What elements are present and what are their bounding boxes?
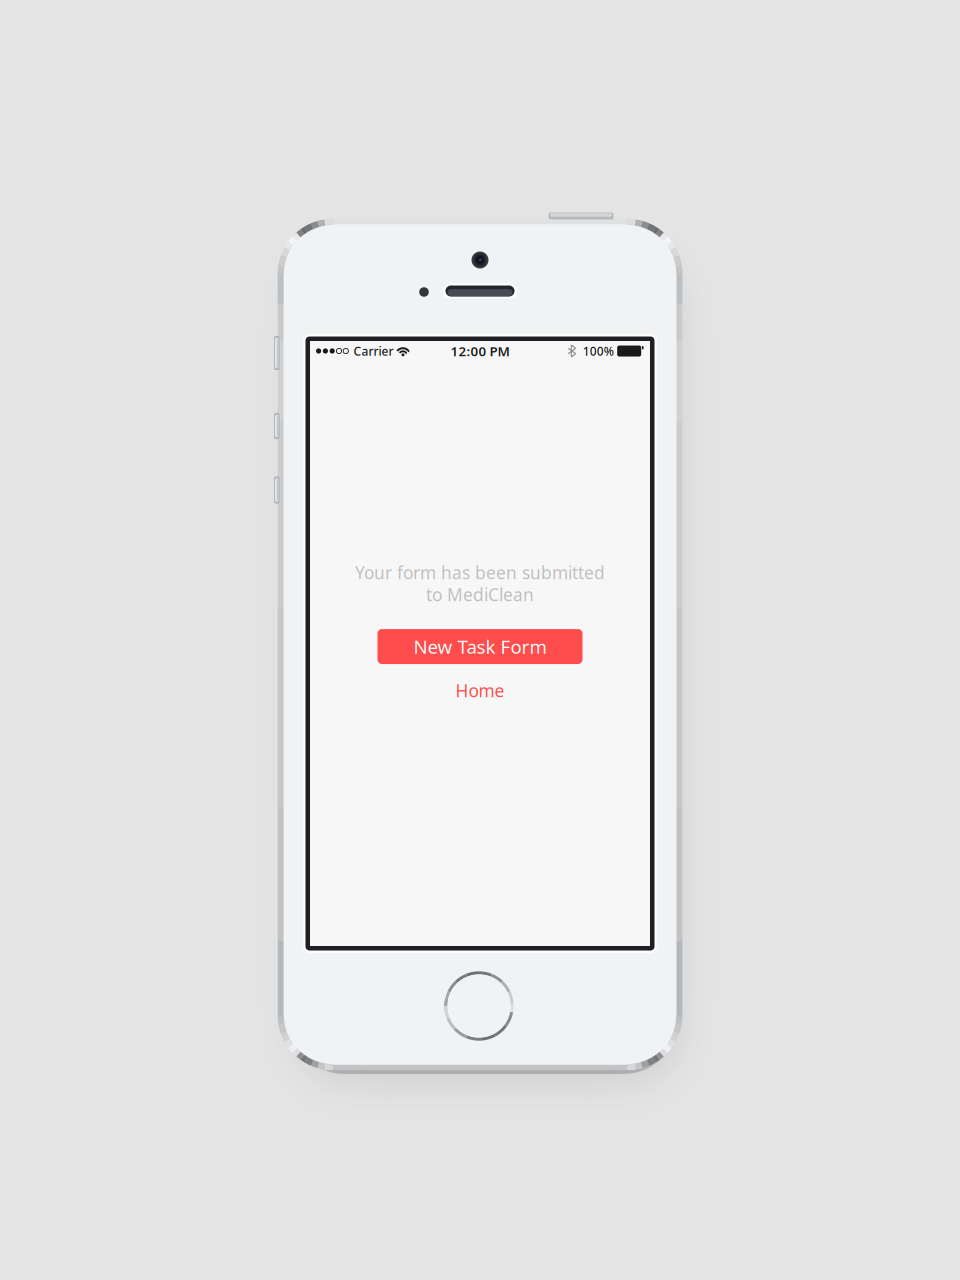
staticText: Your form has been submitted xyxy=(355,561,605,584)
staticText: Home xyxy=(455,679,504,702)
staticText: New Task Form xyxy=(413,634,546,659)
button[interactable]: New Task Form xyxy=(377,629,582,664)
staticText: Carrier xyxy=(353,343,393,359)
button[interactable]: Sleep xyxy=(546,211,616,221)
button[interactable]: Home xyxy=(441,968,517,1044)
button[interactable]: Home xyxy=(435,674,524,707)
staticText: 12:00 PM xyxy=(450,342,509,360)
button[interactable]: Volume down xyxy=(273,474,281,505)
staticText: to MediClean xyxy=(426,583,534,606)
button[interactable]: Ring silent switch xyxy=(273,334,281,372)
staticText: 100% xyxy=(583,343,614,359)
button[interactable]: Volume up xyxy=(273,411,281,441)
